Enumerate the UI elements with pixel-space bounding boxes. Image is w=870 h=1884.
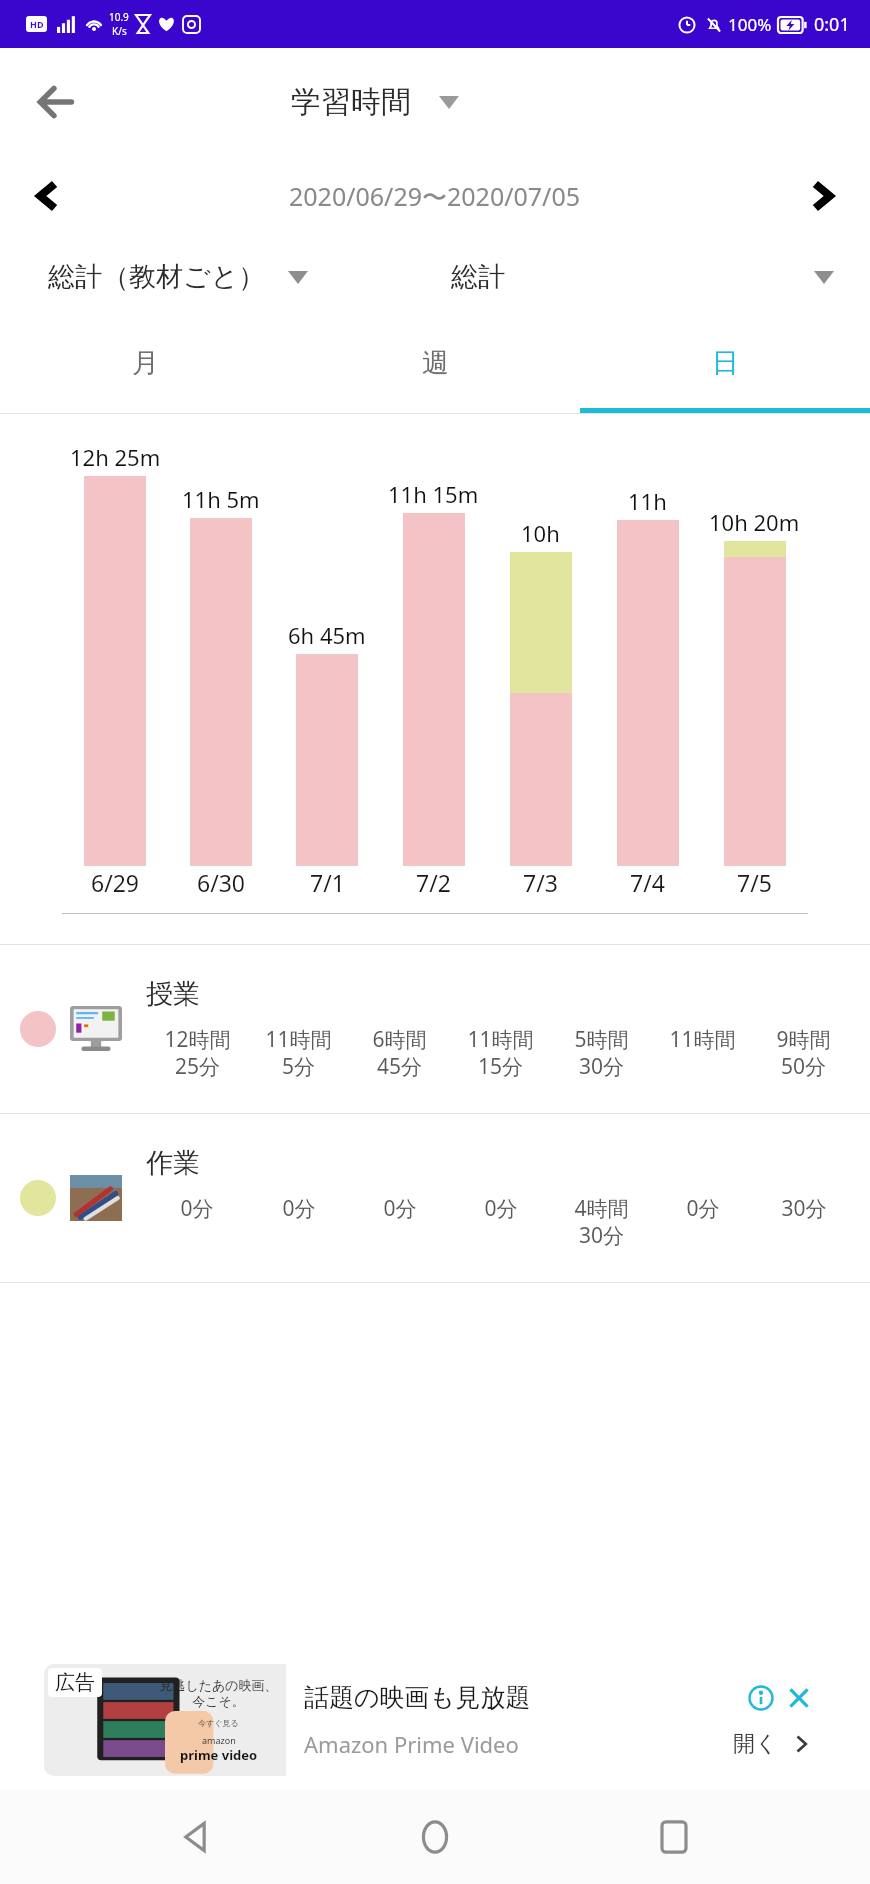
button[interactable]: Next week xyxy=(792,166,852,226)
staticText: 100% xyxy=(728,13,772,36)
staticText: 11時間 5分 xyxy=(265,1025,332,1081)
staticText: 7/3 xyxy=(523,867,558,898)
staticText: 11時間 15分 xyxy=(467,1025,534,1081)
staticText: 2020/06/29〜2020/07/05 xyxy=(289,179,581,213)
staticText: 6/29 xyxy=(91,867,140,898)
staticText: 学習時間 xyxy=(291,83,411,121)
staticText: 6h 45m xyxy=(288,620,366,650)
staticText: 12時間 25分 xyxy=(164,1025,231,1081)
staticText: 作業 xyxy=(146,1146,200,1180)
staticText: 月 xyxy=(132,346,159,380)
staticText: 7/5 xyxy=(737,867,772,898)
staticText: HD xyxy=(30,18,44,30)
staticText: 7/4 xyxy=(630,867,665,898)
button[interactable]: Ad info xyxy=(748,1685,774,1711)
staticText: 4時間 30分 xyxy=(574,1194,629,1250)
staticText: 今すぐ見る xyxy=(198,1718,239,1728)
staticText: 11h 5m xyxy=(182,484,260,514)
staticText: prime video xyxy=(180,1746,258,1764)
button[interactable]: 作業 xyxy=(0,1114,870,1282)
button[interactable]: Close ad xyxy=(786,1685,812,1711)
button[interactable]: Previous week xyxy=(18,166,78,226)
staticText: 11h xyxy=(628,486,667,516)
button[interactable]: 学習時間 xyxy=(291,83,459,121)
staticText: 7/2 xyxy=(416,867,451,898)
staticText: 授業 xyxy=(146,977,200,1011)
staticText: 週 xyxy=(422,346,449,380)
staticText: 0分 xyxy=(484,1194,518,1223)
staticText: 30分 xyxy=(781,1194,827,1223)
staticText: 0分 xyxy=(383,1194,417,1223)
staticText: 0分 xyxy=(686,1194,720,1223)
staticText: 総計（教材ごと） xyxy=(48,260,266,294)
staticText: 6時間 45分 xyxy=(372,1025,427,1081)
staticText: 見逃したあの映画、 今こそ。 xyxy=(159,1677,278,1710)
button[interactable]: 総計（教材ごと） xyxy=(0,236,435,318)
staticText: 0:01 xyxy=(814,12,850,37)
staticText: 広告 xyxy=(55,1670,95,1695)
button[interactable]: Recents xyxy=(631,1794,717,1880)
staticText: 10.9 xyxy=(109,10,129,24)
staticText: 11h 15m xyxy=(388,479,479,509)
button[interactable]: Back xyxy=(26,71,88,133)
staticText: 開く xyxy=(733,1730,778,1758)
button[interactable]: 日 xyxy=(580,318,870,408)
button[interactable]: 見逃したあの映画、 今こそ。 xyxy=(44,1664,826,1776)
staticText: K/s xyxy=(112,24,127,38)
staticText: 11時間 xyxy=(669,1025,736,1054)
staticText: 6/30 xyxy=(197,867,246,898)
staticText: 話題の映画も見放題 xyxy=(304,1682,748,1713)
staticText: 10h 20m xyxy=(709,507,800,537)
button[interactable]: Back xyxy=(153,1794,239,1880)
staticText: 12h 25m xyxy=(70,442,161,472)
staticText: 7/1 xyxy=(310,867,345,898)
button[interactable]: 総計 xyxy=(435,236,870,318)
staticText: 10h xyxy=(521,518,560,548)
button[interactable]: 週 xyxy=(290,318,580,408)
staticText: 5時間 30分 xyxy=(574,1025,629,1081)
button[interactable]: 月 xyxy=(0,318,290,408)
staticText: 0分 xyxy=(180,1194,214,1223)
staticText: amazon xyxy=(202,1734,236,1746)
staticText: 総計 xyxy=(451,260,505,294)
staticText: 0分 xyxy=(282,1194,316,1223)
staticText: Amazon Prime Video xyxy=(304,1729,733,1759)
staticText: 9時間 50分 xyxy=(776,1025,831,1081)
button[interactable]: Home xyxy=(392,1794,478,1880)
staticText: 日 xyxy=(712,346,739,380)
button[interactable]: 授業 xyxy=(0,945,870,1113)
